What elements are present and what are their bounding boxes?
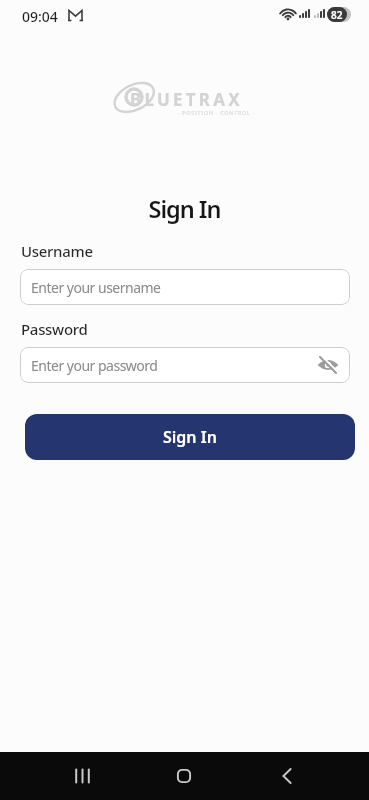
staticText: Password: [21, 319, 88, 339]
staticText: Username: [21, 241, 93, 261]
staticText: Sign In: [163, 426, 217, 448]
button[interactable]: [162, 752, 206, 800]
button[interactable]: [310, 347, 346, 383]
staticText: BLUETRAX: [130, 88, 243, 111]
button[interactable]: [61, 752, 105, 800]
button[interactable]: Sign In: [25, 414, 355, 460]
staticText: · POSITION · CONTROL ·: [178, 109, 255, 116]
staticText: Enter your username: [31, 278, 161, 297]
button[interactable]: [265, 752, 309, 800]
button[interactable]: Enter your password: [20, 347, 350, 383]
button[interactable]: Enter your username: [20, 269, 350, 305]
staticText: Sign In: [0, 193, 369, 225]
staticText: 09:04: [22, 7, 58, 26]
staticText: Enter your password: [31, 356, 158, 375]
staticText: 82: [331, 8, 343, 22]
